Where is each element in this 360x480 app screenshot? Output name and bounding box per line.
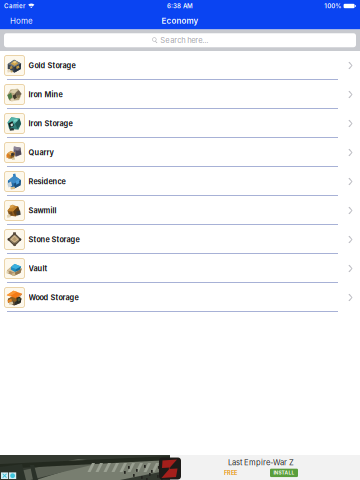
- button[interactable]: Home: [0, 13, 41, 29]
- staticText: Iron Mine: [28, 90, 62, 99]
- button[interactable]: Vault: [0, 254, 360, 283]
- staticText: Stone Storage: [28, 235, 79, 244]
- staticText: Residence: [28, 177, 65, 186]
- button[interactable]: Sawmill: [0, 196, 360, 225]
- button[interactable]: Last Empire-War Z: [0, 455, 360, 480]
- staticText: Carrier: [4, 2, 25, 10]
- staticText: Sawmill: [28, 206, 56, 215]
- button[interactable]: Gold Storage: [0, 51, 360, 80]
- staticText: 100%: [324, 2, 341, 10]
- button[interactable]: Quarry: [0, 138, 360, 167]
- staticText: Quarry: [28, 148, 53, 157]
- staticText: Search here...: [160, 36, 208, 45]
- staticText: Vault: [28, 264, 47, 273]
- staticText: Iron Storage: [28, 119, 72, 128]
- button[interactable]: Search here...: [0, 33, 360, 47]
- button[interactable]: Close ad: [1, 472, 8, 479]
- button[interactable]: Residence: [0, 167, 360, 196]
- button[interactable]: Iron Mine: [0, 80, 360, 109]
- staticText: Wood Storage: [28, 293, 78, 302]
- staticText: 6:38 AM: [167, 2, 193, 10]
- staticText: Last Empire-War Z: [228, 458, 294, 467]
- staticText: Economy: [161, 16, 198, 26]
- button[interactable]: Wood Storage: [0, 283, 360, 312]
- staticText: INSTALL: [273, 470, 294, 476]
- button[interactable]: Ad choices: [9, 472, 16, 479]
- button[interactable]: Iron Storage: [0, 109, 360, 138]
- staticText: FREE: [224, 469, 237, 476]
- button[interactable]: Stone Storage: [0, 225, 360, 254]
- staticText: Home: [10, 16, 33, 26]
- staticText: Gold Storage: [28, 61, 75, 70]
